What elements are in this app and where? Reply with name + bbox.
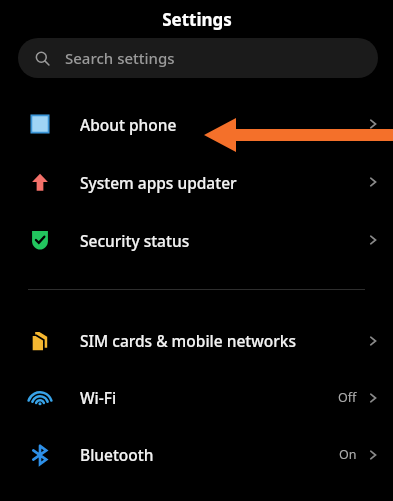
button[interactable]: Search settings	[18, 38, 378, 78]
button[interactable]: Bluetooth	[0, 426, 393, 483]
staticText: About phone	[80, 114, 365, 135]
button[interactable]: System apps updater	[0, 153, 393, 211]
staticText: SIM cards & mobile networks	[80, 330, 365, 351]
button[interactable]: Security status	[0, 211, 393, 269]
button[interactable]: Wi-Fi	[0, 369, 393, 426]
staticText: Settings	[162, 8, 232, 31]
staticText: Security status	[80, 230, 365, 251]
staticText: Off	[338, 389, 357, 406]
staticText: Bluetooth	[80, 444, 339, 465]
button[interactable]: About phone	[0, 95, 393, 153]
staticText: System apps updater	[80, 172, 365, 193]
staticText: Search settings	[65, 48, 175, 68]
staticText: On	[339, 446, 357, 463]
staticText: Wi-Fi	[80, 387, 338, 408]
button[interactable]: SIM cards & mobile networks	[0, 312, 393, 369]
